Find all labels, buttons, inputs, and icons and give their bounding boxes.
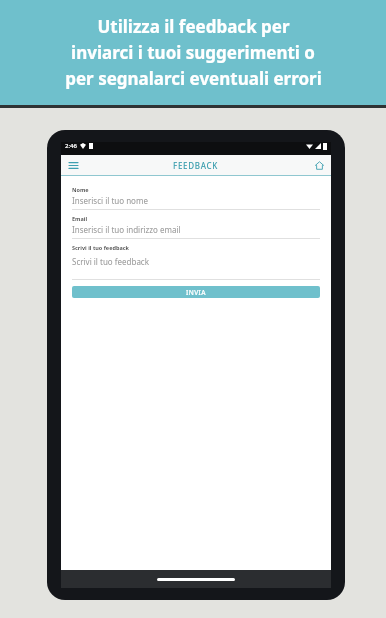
button[interactable]: INVIA: [72, 286, 320, 298]
staticText: Scrivi il tuo feedback: [72, 244, 129, 251]
staticText: Nome: [72, 186, 89, 193]
button[interactable]: Nome: [72, 186, 320, 210]
staticText: per segnalarci eventuali errori: [65, 67, 322, 90]
button[interactable]: Email: [72, 215, 320, 239]
button[interactable]: Menu: [66, 158, 80, 172]
staticText: FEEDBACK: [173, 160, 219, 171]
staticText: 2:46: [65, 142, 77, 150]
button[interactable]: Home: [312, 158, 326, 172]
button[interactable]: Scrivi il tuo feedback: [72, 244, 320, 280]
staticText: Scrivi il tuo feedback: [72, 256, 149, 267]
staticText: Inserisci il tuo indirizzo email: [72, 224, 181, 235]
staticText: inviarci i tuoi suggerimenti o: [71, 41, 315, 64]
staticText: Email: [72, 215, 88, 222]
staticText: Inserisci il tuo nome: [72, 195, 148, 206]
staticText: INVIA: [186, 288, 206, 297]
staticText: Utilizza il feedback per: [97, 15, 290, 38]
